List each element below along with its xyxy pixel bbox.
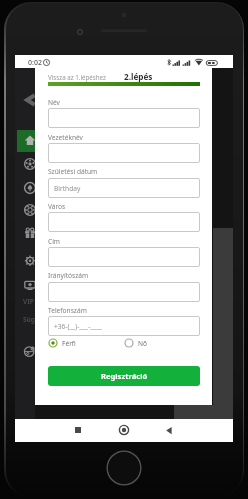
button[interactable]: Awards [20, 252, 40, 272]
staticText: Regisztráció [101, 371, 148, 381]
staticText: Irányítószám [48, 271, 89, 280]
button[interactable]: Nő [124, 338, 148, 348]
button[interactable]: Home [17, 130, 37, 152]
staticText: +36-(__)-___-____ [54, 322, 102, 331]
button[interactable] [48, 282, 200, 302]
staticText: 0:02 [28, 58, 42, 68]
button[interactable] [48, 108, 200, 128]
staticText: 2.lépés [124, 71, 153, 82]
button[interactable]: Recents [68, 420, 88, 440]
staticText: Város [48, 202, 66, 211]
button[interactable]: Regisztráció [48, 366, 200, 386]
staticText: Vissza az 1.lépéshez [48, 73, 106, 81]
button[interactable]: Sports [20, 154, 40, 174]
button[interactable]: Casino [20, 178, 40, 198]
button[interactable]: Promotions [20, 223, 40, 243]
button[interactable]: Home [114, 420, 134, 440]
button[interactable] [48, 212, 200, 232]
staticText: Súg [23, 315, 35, 324]
staticText: Vezetéknév [48, 133, 83, 142]
staticText: Nő [138, 339, 148, 348]
button[interactable]: Language [20, 341, 40, 361]
staticText: VIP [23, 297, 34, 306]
button[interactable]: Live TV [20, 275, 40, 295]
button[interactable]: Birthday [48, 178, 200, 198]
button[interactable] [48, 143, 200, 163]
staticText: Férfi [62, 339, 76, 348]
button[interactable]: Férfi [48, 338, 76, 348]
staticText: Név [48, 98, 60, 107]
button[interactable]: Collapse menu [21, 91, 39, 109]
staticText: Születési dátum [48, 167, 98, 176]
button[interactable] [48, 247, 200, 267]
button[interactable]: Poker [20, 200, 40, 220]
staticText: Telefonszám [48, 306, 87, 315]
button[interactable]: Back [159, 420, 179, 440]
staticText: Cím [48, 237, 61, 246]
staticText: Birthday [54, 184, 81, 193]
button[interactable]: +36-(__)-___-____ [48, 316, 200, 336]
